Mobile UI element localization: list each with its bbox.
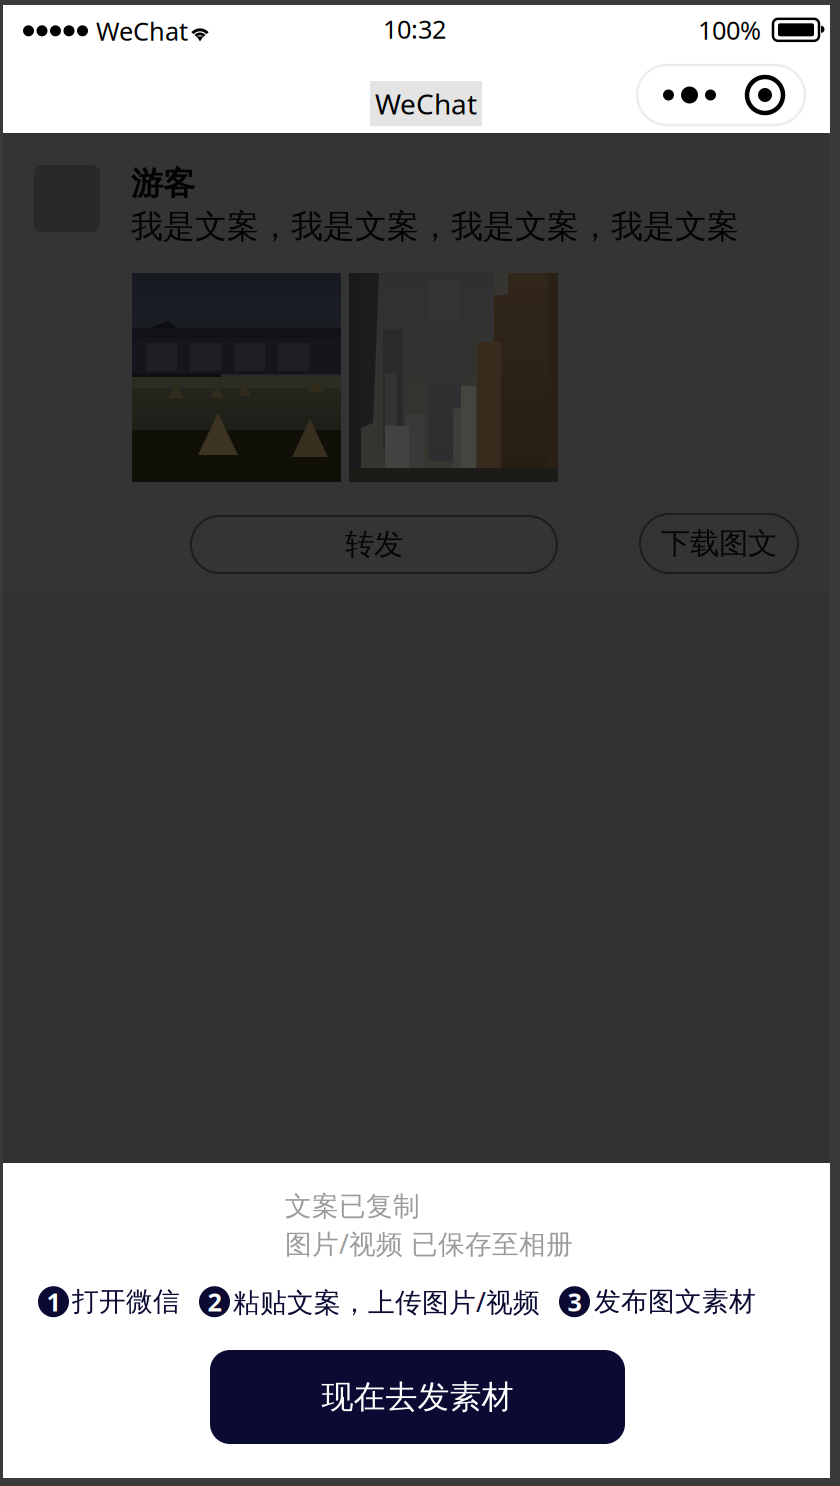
staticText: 打开微信 xyxy=(72,1285,180,1318)
button[interactable]: 转发 xyxy=(191,516,557,573)
staticText: 我是文案，我是文案，我是文案，我是文案 xyxy=(131,207,739,246)
button[interactable]: 下载图文 xyxy=(640,514,798,573)
staticText: 转发 xyxy=(345,526,403,562)
staticText: 2 xyxy=(207,1285,221,1318)
staticText: 发布图文素材 xyxy=(594,1285,756,1318)
staticText: 3 xyxy=(567,1285,581,1318)
staticText: WeChat xyxy=(96,14,188,48)
staticText: 文案已复制 xyxy=(285,1190,420,1223)
staticText: 1 xyxy=(46,1285,60,1318)
staticText: 10:32 xyxy=(383,12,446,46)
button[interactable]: More xyxy=(637,65,805,125)
staticText: 粘贴文案，上传图片/视频 xyxy=(233,1284,540,1319)
staticText: 下载图文 xyxy=(661,525,777,561)
staticText: 100% xyxy=(698,13,761,47)
staticText: 现在去发素材 xyxy=(321,1377,513,1417)
button[interactable]: 现在去发素材 xyxy=(210,1350,625,1444)
staticText: 游客 xyxy=(131,164,195,203)
staticText: WeChat xyxy=(375,85,477,122)
staticText: 图片/视频 已保存至相册 xyxy=(285,1226,573,1261)
